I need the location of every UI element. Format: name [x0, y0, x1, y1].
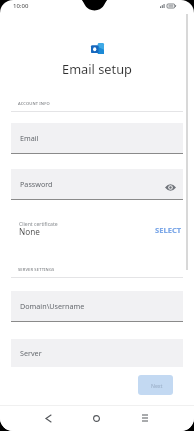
button[interactable]: Next: [138, 375, 173, 395]
staticText: ACCOUNT INFO: [18, 101, 50, 107]
staticText: Domain\Username: [20, 301, 85, 311]
button[interactable]: Domain\Username: [11, 291, 183, 321]
staticText: Email setup: [0, 60, 194, 77]
staticText: Next: [151, 382, 163, 389]
staticText: 10:00: [13, 2, 29, 10]
staticText: Password: [20, 179, 53, 189]
staticText: SELECT: [155, 225, 182, 235]
staticText: SERVER SETTINGS: [18, 267, 55, 273]
button[interactable]: Client certificate: [0, 221, 194, 239]
staticText: Email: [20, 133, 39, 143]
button[interactable]: Home: [81, 407, 112, 429]
other: Show password: [165, 184, 176, 191]
staticText: Client certificate: [19, 221, 58, 228]
button[interactable]: Password: [11, 169, 183, 199]
button[interactable]: Recent apps: [129, 407, 160, 429]
staticText: Server: [20, 348, 42, 358]
button[interactable]: Back: [33, 407, 64, 429]
button[interactable]: Email: [11, 123, 183, 153]
staticText: None: [19, 226, 40, 237]
button[interactable]: Server: [11, 339, 183, 367]
